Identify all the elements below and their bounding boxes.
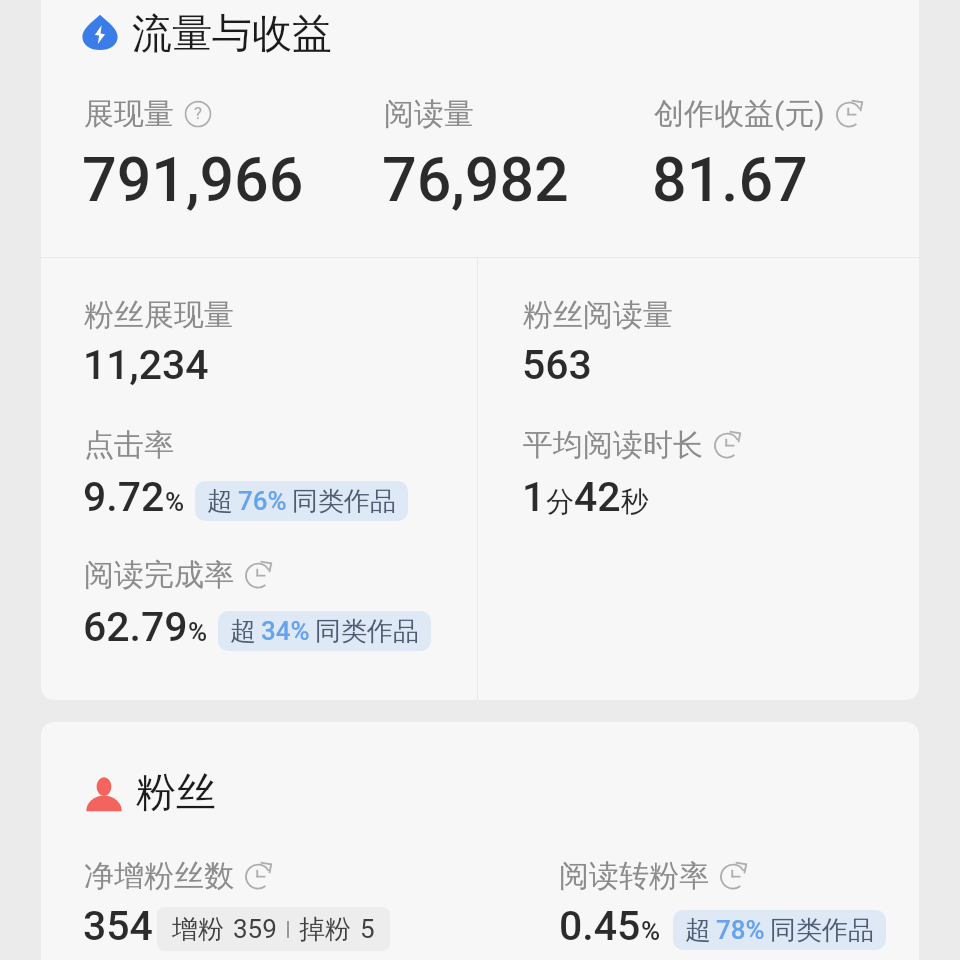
- button[interactable]: [382, 88, 632, 218]
- button[interactable]: 9.72: [83, 473, 408, 521]
- staticText: 平均阅读时长: [523, 426, 703, 464]
- button[interactable]: 展现量: [84, 95, 213, 133]
- staticText: 超: [685, 914, 711, 947]
- staticText: 点击率: [84, 426, 174, 464]
- other: Recently updated: [712, 430, 742, 460]
- staticText: 粉丝阅读量: [523, 296, 673, 334]
- staticText: 同类作品: [770, 914, 874, 947]
- button[interactable]: [517, 849, 917, 959]
- button[interactable]: 阅读完成率: [84, 556, 273, 594]
- staticText: 563: [522, 341, 592, 389]
- staticText: 掉粉: [299, 913, 351, 946]
- staticText: 78%: [716, 915, 765, 945]
- staticText: 76%: [238, 486, 287, 516]
- button[interactable]: 0.45: [559, 902, 886, 950]
- button[interactable]: 流量与收益: [82, 0, 332, 66]
- other: Help: [183, 99, 213, 129]
- staticText: 超: [230, 615, 256, 648]
- button[interactable]: [82, 849, 517, 959]
- other: Recently updated: [718, 861, 748, 891]
- button[interactable]: 阅读转粉率: [559, 857, 748, 895]
- staticText: 流量与收益: [132, 8, 332, 58]
- staticText: 76,982: [382, 144, 569, 215]
- staticText: 354: [83, 902, 153, 950]
- staticText: 分: [546, 484, 574, 519]
- button[interactable]: 平均阅读时长: [523, 426, 742, 464]
- button[interactable]: 点击率: [84, 426, 174, 464]
- staticText: 81.67: [652, 144, 808, 215]
- button[interactable]: 阅读量: [384, 95, 474, 133]
- staticText: 同类作品: [315, 615, 419, 648]
- button[interactable]: 超: [218, 611, 431, 651]
- button[interactable]: 超: [673, 910, 886, 950]
- button[interactable]: [82, 548, 475, 658]
- staticText: 同类作品: [292, 485, 396, 518]
- staticText: 62.79: [83, 603, 188, 651]
- staticText: 净增粉丝数: [84, 857, 234, 895]
- staticText: 阅读完成率: [84, 556, 234, 594]
- staticText: 359: [233, 914, 277, 944]
- staticText: 粉丝展现量: [84, 296, 234, 334]
- button[interactable]: 粉丝阅读量: [523, 296, 673, 334]
- button[interactable]: 粉丝展现量: [84, 296, 234, 334]
- button[interactable]: 粉丝: [84, 767, 216, 815]
- button[interactable]: 创作收益(元): [654, 95, 864, 133]
- button[interactable]: 1: [522, 473, 649, 521]
- button[interactable]: [521, 418, 914, 528]
- button[interactable]: 增粉: [157, 907, 390, 951]
- staticText: %: [165, 487, 185, 517]
- staticText: 0.45: [559, 902, 641, 950]
- staticText: 34%: [261, 616, 310, 646]
- button[interactable]: [652, 88, 902, 218]
- button[interactable]: [82, 288, 475, 398]
- staticText: 秒: [621, 484, 649, 519]
- button[interactable]: [521, 288, 914, 398]
- button[interactable]: 354: [83, 902, 153, 950]
- button[interactable]: 超: [195, 481, 408, 521]
- staticText: ?: [194, 103, 202, 123]
- staticText: 11,234: [83, 341, 209, 389]
- staticText: 9.72: [83, 473, 165, 521]
- button[interactable]: [82, 88, 362, 218]
- button[interactable]: 62.79: [83, 603, 431, 651]
- staticText: 791,966: [82, 144, 304, 215]
- button[interactable]: 净增粉丝数: [84, 857, 273, 895]
- other: Recently updated: [243, 861, 273, 891]
- staticText: 阅读转粉率: [559, 857, 709, 895]
- staticText: 1: [522, 473, 546, 521]
- staticText: 展现量: [84, 95, 174, 133]
- staticText: 创作收益(元): [654, 95, 825, 133]
- staticText: 粉丝: [136, 767, 216, 815]
- staticText: 超: [207, 485, 233, 518]
- staticText: 阅读量: [384, 95, 474, 133]
- staticText: 5: [360, 914, 375, 944]
- staticText: %: [641, 916, 661, 946]
- staticText: 增粉: [172, 913, 224, 946]
- other: Recently updated: [834, 99, 864, 129]
- staticText: 42: [574, 473, 621, 521]
- button[interactable]: [82, 418, 475, 528]
- staticText: %: [188, 617, 208, 647]
- other: Recently updated: [243, 560, 273, 590]
